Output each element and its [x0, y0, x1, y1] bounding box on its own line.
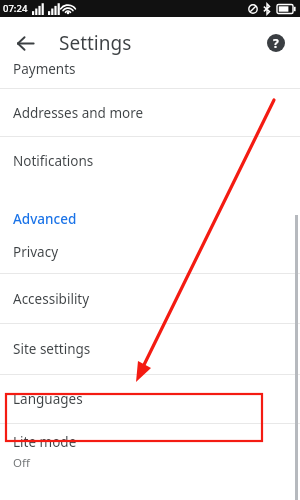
button[interactable]: Lite mode [0, 424, 300, 480]
staticText: Settings [59, 30, 132, 56]
staticText: Off [13, 455, 30, 471]
staticText: Languages [13, 390, 83, 408]
staticText: Privacy [13, 243, 59, 261]
staticText: Accessibility [13, 290, 90, 308]
button[interactable]: Advanced [0, 207, 300, 231]
staticText: Notifications [13, 152, 94, 170]
staticText: Lite mode [13, 433, 77, 451]
button[interactable]: Back [8, 26, 42, 60]
button[interactable]: Languages [0, 375, 300, 423]
staticText: Site settings [13, 340, 91, 358]
staticText: Addresses and more [13, 104, 144, 122]
button[interactable]: Help [260, 27, 292, 59]
button[interactable]: Privacy [0, 231, 300, 273]
button[interactable]: Addresses and more [0, 89, 300, 136]
button[interactable]: Notifications [0, 137, 300, 185]
staticText: Advanced [13, 210, 77, 228]
staticText: Payments [13, 60, 76, 78]
button[interactable]: Accessibility [0, 274, 300, 323]
staticText: ? [273, 35, 279, 51]
staticText: 07:24 [3, 2, 28, 15]
button[interactable]: Site settings [0, 324, 300, 374]
